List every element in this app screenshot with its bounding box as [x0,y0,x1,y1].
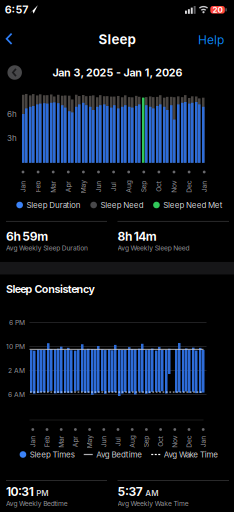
staticText: PM [36,488,48,498]
staticText: Mar [55,438,67,445]
staticText: Avg Bedtime [96,450,142,459]
staticText: 8h 14m [117,229,157,244]
staticText: 20 [213,5,223,14]
staticText: Jun [98,438,110,445]
staticText: Nov [168,183,180,190]
staticText: May [77,183,90,190]
staticText: Jan 3, 2025 - Jan 1, 2026 [52,66,183,79]
staticText: Sep [138,183,150,190]
button[interactable]: Help [194,30,228,50]
staticText: Apr [70,438,81,445]
staticText: Apr [62,183,74,190]
staticText: 2 AM [8,367,25,374]
staticText: Help [198,33,224,47]
staticText: 6h [7,109,17,119]
staticText: Dec [183,438,195,445]
staticText: Sleep [98,32,135,47]
staticText: Dec [183,183,195,190]
staticText: Aug [126,438,138,445]
staticText: Sleep Need Met [163,200,223,210]
staticText: Sleep Consistency [6,283,94,295]
staticText: Oct [155,438,166,445]
staticText: 6 PM [9,319,25,326]
staticText: Aug [122,183,135,190]
staticText: Avg Weekly Sleep Duration [6,244,88,252]
staticText: Feb [32,183,44,190]
staticText: Jul [109,183,118,190]
staticText: Avg Wake Time [164,450,218,459]
staticText: AM [145,488,158,498]
staticText: Sleep Need [100,200,144,210]
staticText: 6h 59m [6,229,48,244]
staticText: Sleep Duration [26,200,81,210]
staticText: 6 AM [8,391,25,398]
staticText: Jul [113,438,123,445]
staticText: Sleep Times [30,450,75,459]
staticText: 3h [7,133,17,143]
staticText: Oct [154,183,164,190]
staticText: Avg Weekly Bedtime [6,500,68,508]
button[interactable]: Back [0,26,20,52]
staticText: Sep [141,438,152,445]
staticText: Jan [17,183,29,190]
staticText: Avg Weekly Sleep Need [117,244,189,252]
staticText: Jan [197,438,209,445]
staticText: 6:57 [5,3,28,16]
staticText: Nov [168,438,181,445]
staticText: Jan [27,438,39,445]
staticText: May [83,438,96,445]
staticText: Jun [93,183,104,190]
staticText: Feb [41,438,53,445]
button[interactable]: Previous Period [7,65,22,80]
staticText: Mar [47,183,59,190]
staticText: Avg Weekly Wake Time [117,500,189,508]
staticText: 5:37 [117,484,143,499]
staticText: 10:31 [6,484,34,499]
staticText: 10 PM [6,343,25,350]
staticText: Jan [198,183,210,190]
